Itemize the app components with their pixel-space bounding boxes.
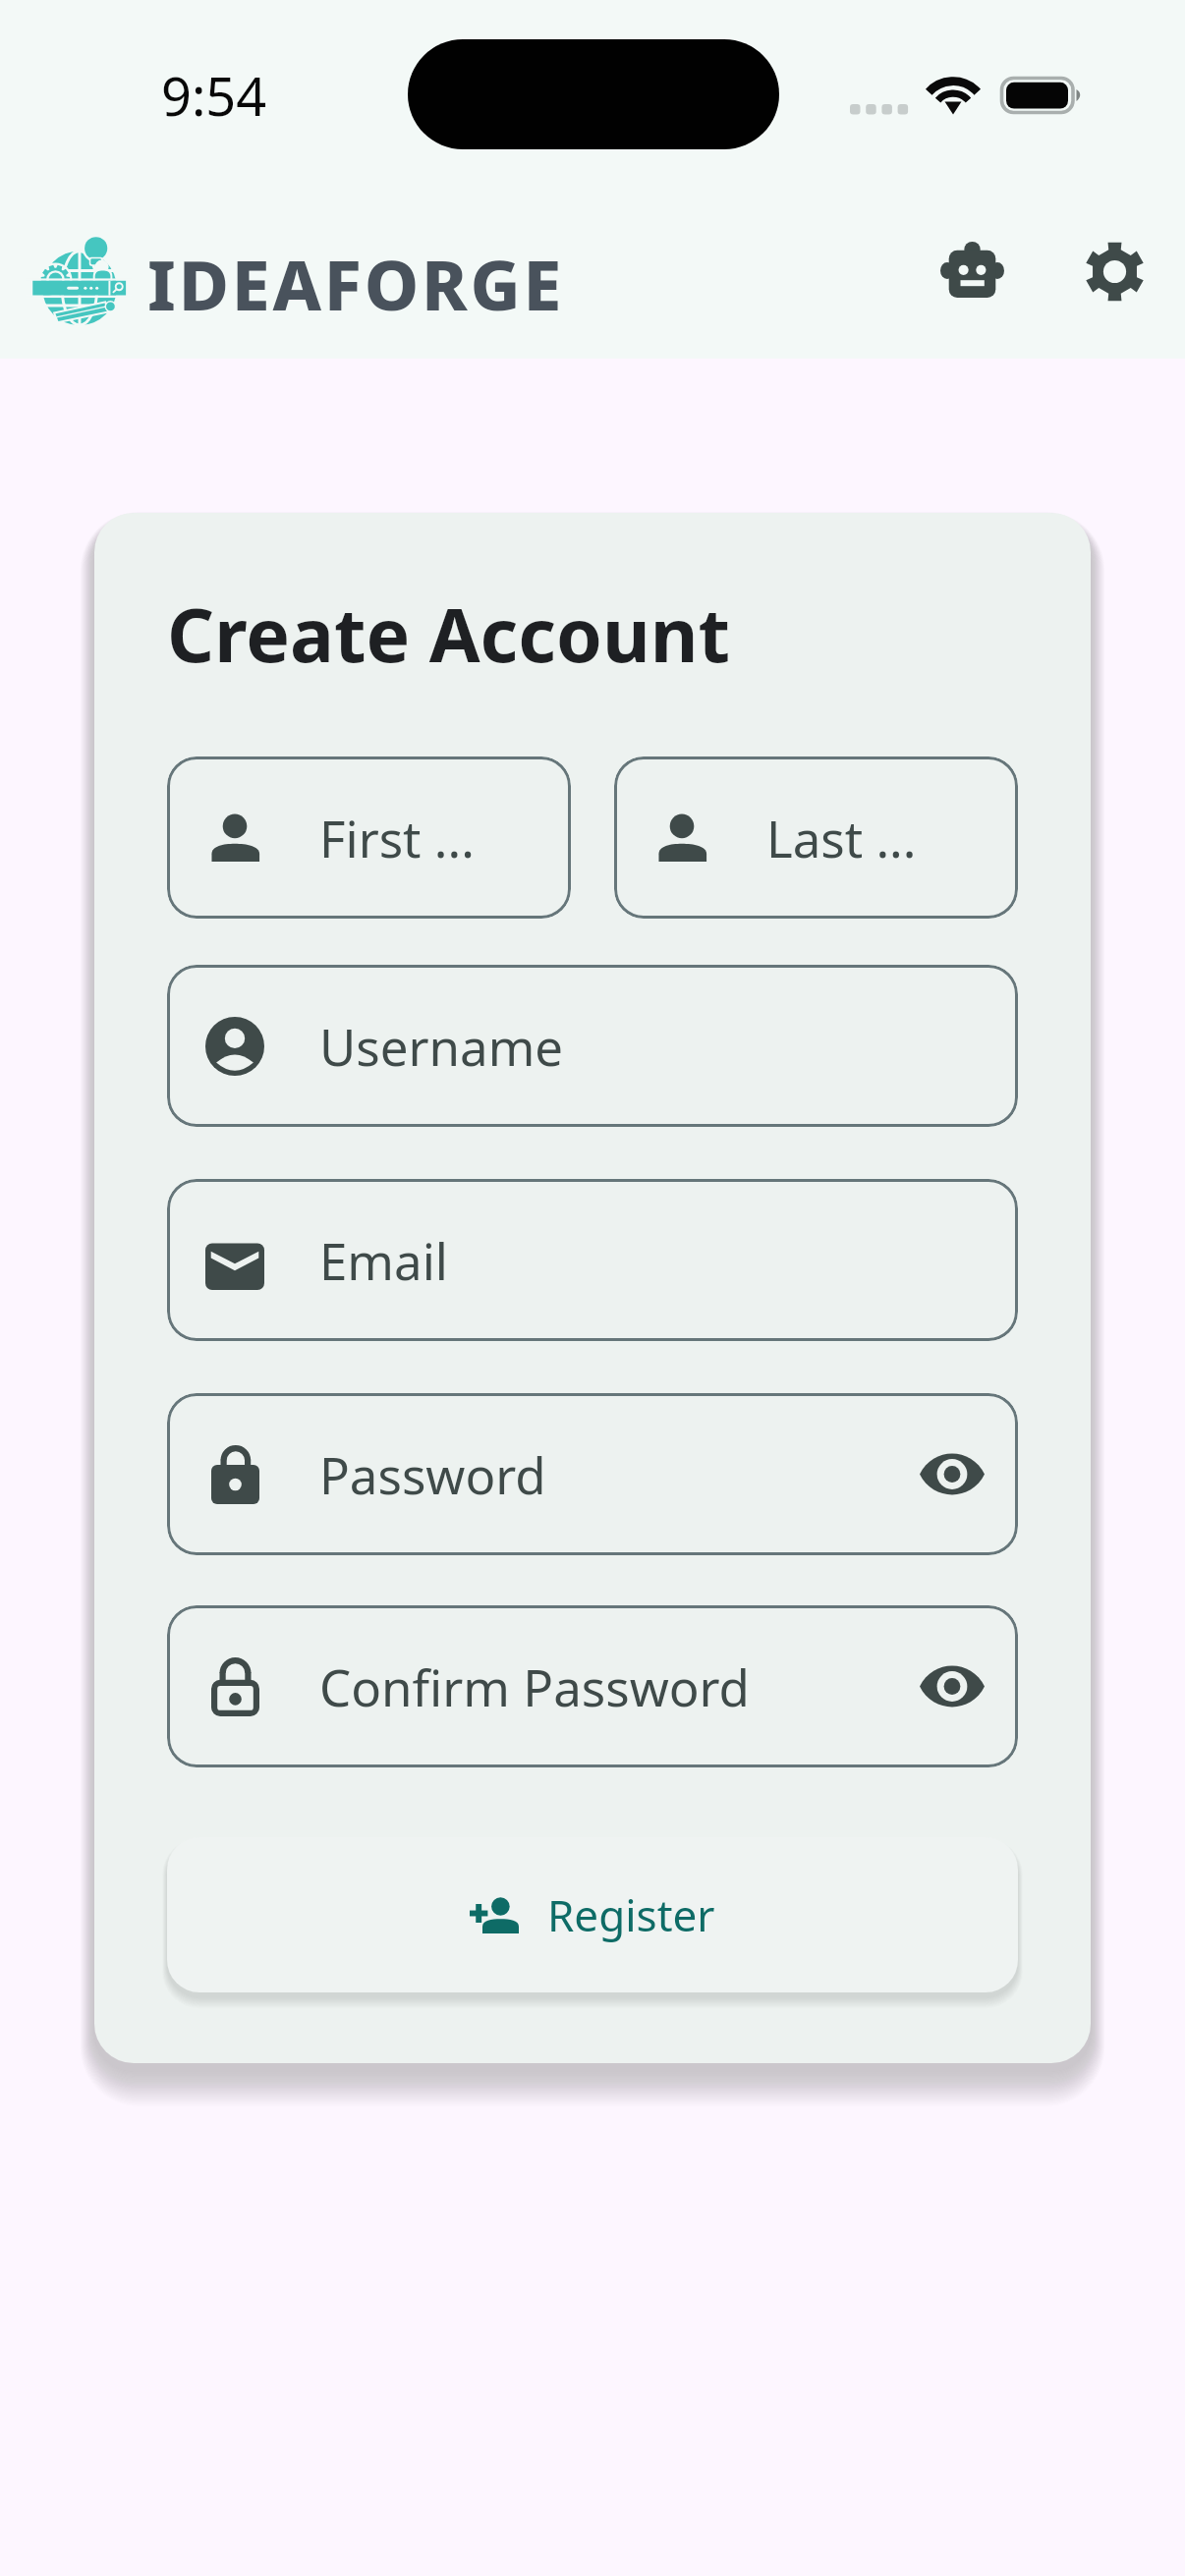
staticText: Last ... bbox=[766, 804, 917, 871]
staticText: IDEAFORGE bbox=[147, 237, 565, 330]
staticText: Create Account bbox=[167, 584, 730, 684]
staticText: Password bbox=[319, 1440, 546, 1508]
button[interactable]: Assistant bbox=[921, 214, 1024, 324]
button[interactable]: Email bbox=[167, 1179, 1018, 1341]
staticText: Register bbox=[547, 1885, 715, 1944]
button[interactable]: Settings bbox=[1059, 216, 1169, 326]
staticText: Username bbox=[319, 1012, 564, 1080]
staticText: First ... bbox=[319, 804, 475, 871]
button[interactable]: First ... bbox=[167, 756, 571, 919]
button[interactable]: Username bbox=[167, 965, 1018, 1127]
button[interactable]: Register bbox=[167, 1837, 1018, 1992]
button[interactable]: Password bbox=[167, 1393, 1018, 1555]
button[interactable]: Last ... bbox=[614, 756, 1018, 919]
staticText: Email bbox=[319, 1226, 448, 1294]
staticText: 9:54 bbox=[161, 59, 267, 132]
button[interactable]: Confirm Password bbox=[167, 1605, 1018, 1767]
staticText: Confirm Password bbox=[319, 1652, 750, 1720]
